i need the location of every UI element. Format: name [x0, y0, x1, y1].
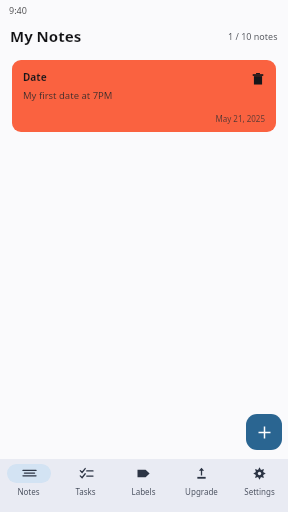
staticText: 9:40	[9, 4, 27, 16]
button[interactable]: Add note	[246, 414, 282, 450]
button[interactable]: Notes	[0, 459, 57, 512]
button[interactable]: Settings	[230, 459, 288, 512]
staticText: My first date at 7PM	[23, 89, 113, 102]
staticText: May 21, 2025	[12, 113, 265, 124]
button[interactable]: Tasks	[57, 459, 114, 512]
staticText: Upgrade	[185, 486, 218, 497]
staticText: Date	[23, 70, 47, 84]
staticText: Settings	[244, 486, 275, 497]
button[interactable]: Upgrade	[172, 459, 230, 512]
staticText: Labels	[131, 486, 156, 497]
button[interactable]: Delete note	[249, 70, 267, 88]
staticText: Tasks	[75, 486, 96, 497]
staticText: 1 / 10 notes	[228, 30, 278, 42]
button[interactable]: Date	[12, 60, 276, 132]
button[interactable]: Labels	[114, 459, 172, 512]
staticText: My Notes	[10, 26, 82, 46]
staticText: Notes	[17, 486, 40, 497]
